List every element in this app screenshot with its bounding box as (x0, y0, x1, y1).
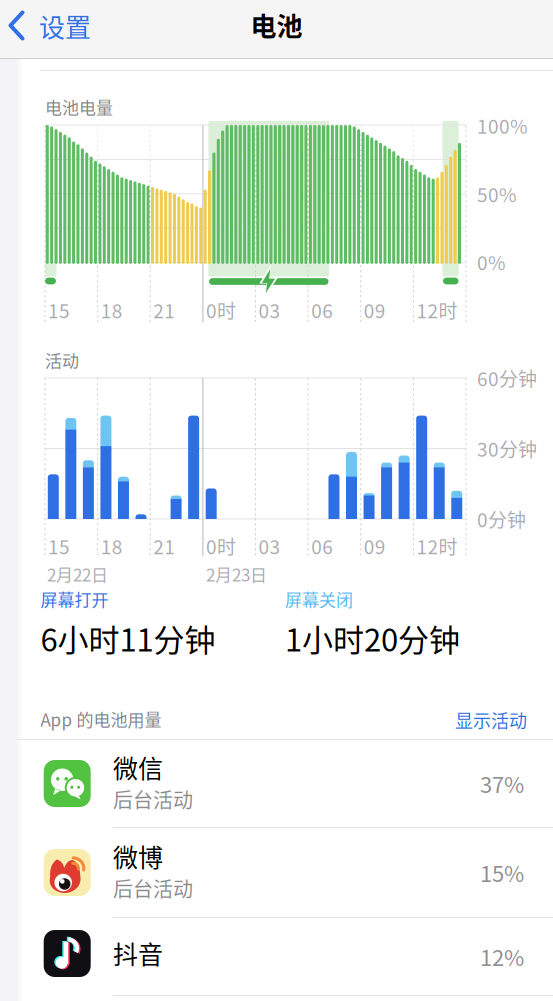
staticText: 活动 (45, 348, 79, 372)
staticText: 抖音 (113, 935, 163, 971)
staticText: 15% (480, 857, 524, 888)
staticText: 后台活动 (113, 784, 193, 813)
button[interactable]: 微博 (0, 827, 553, 917)
staticText: 03 (258, 532, 280, 560)
staticText: 2月22日 (47, 562, 108, 586)
staticText: 09 (364, 532, 386, 560)
staticText: 21 (153, 532, 175, 560)
staticText: 后台活动 (113, 873, 193, 902)
staticText: 6小时11分钟 (40, 616, 215, 660)
staticText: 12% (480, 941, 524, 972)
staticText: 03 (258, 296, 280, 324)
staticText: 09 (364, 296, 386, 324)
staticText: 电池 (250, 6, 302, 44)
button[interactable]: 抖音 (0, 917, 553, 995)
button[interactable]: 显示活动 (446, 705, 536, 735)
staticText: 15 (48, 532, 70, 560)
staticText: 0时 (206, 296, 236, 324)
staticText: 18 (101, 532, 123, 560)
staticText: 微信 (113, 749, 163, 785)
staticText: 06 (311, 532, 333, 560)
staticText: 50% (477, 180, 516, 208)
staticText: 37% (480, 768, 524, 799)
staticText: 微博 (113, 838, 163, 874)
staticText: 2月23日 (206, 562, 267, 586)
staticText: 显示活动 (455, 707, 527, 733)
staticText: 06 (311, 296, 333, 324)
staticText: 电池电量 (45, 95, 113, 119)
button[interactable]: 微信 (0, 739, 553, 827)
staticText: App 的电池用量 (40, 707, 161, 731)
button[interactable]: 设置 (0, 0, 100, 52)
staticText: 0时 (206, 532, 236, 560)
staticText: 18 (101, 296, 123, 324)
staticText: 屏幕关闭 (285, 587, 353, 611)
staticText: 30分钟 (477, 435, 537, 462)
staticText: 21 (153, 296, 175, 324)
staticText: 设置 (39, 7, 91, 45)
staticText: 0分钟 (477, 505, 526, 533)
staticText: 12时 (416, 296, 457, 324)
staticText: 1小时20分钟 (285, 616, 460, 660)
staticText: 15 (48, 296, 70, 324)
staticText: 12时 (416, 532, 457, 560)
staticText: 屏幕打开 (40, 587, 108, 611)
staticText: 0% (477, 248, 505, 276)
staticText: 100% (477, 112, 527, 139)
staticText: 60分钟 (477, 364, 537, 392)
